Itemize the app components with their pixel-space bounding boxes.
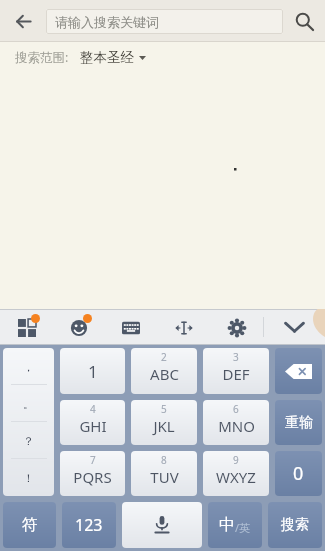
button[interactable]: Keyboard layout xyxy=(104,309,157,345)
staticText: GHI xyxy=(79,416,107,436)
button[interactable]: 8 xyxy=(131,451,197,496)
button[interactable]: Voice input xyxy=(122,502,202,548)
button[interactable]: 中 xyxy=(208,502,262,548)
button[interactable]: 请输入搜索关键词 xyxy=(46,9,283,34)
staticText: 。 xyxy=(23,397,34,411)
button[interactable]: 7 xyxy=(60,451,125,496)
button[interactable]: Hide keyboard xyxy=(263,309,325,345)
staticText: 搜索 xyxy=(281,516,309,534)
staticText: 0 xyxy=(293,461,304,486)
staticText: ！ xyxy=(23,471,34,485)
staticText: 4 xyxy=(90,402,96,416)
staticText: 整本圣经 xyxy=(80,49,134,66)
button[interactable]: 1 xyxy=(60,348,125,394)
button[interactable]: 9 xyxy=(203,451,269,496)
staticText: 请输入搜索关键词 xyxy=(55,14,159,30)
staticText: 9 xyxy=(233,453,239,467)
button[interactable]: 0 xyxy=(275,451,322,496)
button[interactable]: Search xyxy=(283,0,325,42)
staticText: 符 xyxy=(22,515,38,535)
button[interactable]: 6 xyxy=(203,400,269,445)
staticText: 3 xyxy=(233,350,239,364)
button[interactable]: Settings xyxy=(210,309,263,345)
button[interactable]: Emoji xyxy=(52,309,104,345)
staticText: MNO xyxy=(218,416,255,436)
staticText: 重输 xyxy=(285,414,313,432)
staticText: 6 xyxy=(233,402,239,416)
button[interactable]: 符 xyxy=(3,502,56,548)
button[interactable]: ， xyxy=(3,348,54,496)
staticText: 1 xyxy=(88,360,98,383)
staticText: 7 xyxy=(90,453,96,467)
staticText: PQRS xyxy=(73,467,112,487)
staticText: 5 xyxy=(161,402,167,416)
button[interactable]: Backspace xyxy=(275,348,322,394)
staticText: JKL xyxy=(153,416,175,436)
staticText: ？ xyxy=(23,434,34,448)
button[interactable]: Back xyxy=(0,0,46,42)
staticText: 中 xyxy=(219,515,235,535)
staticText: 123 xyxy=(75,514,103,536)
staticText: DEF xyxy=(222,364,250,384)
button[interactable]: Apps xyxy=(0,309,52,345)
button[interactable]: 123 xyxy=(62,502,116,548)
button[interactable]: 5 xyxy=(131,400,197,445)
staticText: ABC xyxy=(150,364,179,384)
staticText: 搜索范围: xyxy=(15,49,69,66)
staticText: /英 xyxy=(235,520,251,535)
button[interactable]: 3 xyxy=(203,348,269,394)
button[interactable]: 重输 xyxy=(275,400,322,445)
button[interactable]: 4 xyxy=(60,400,125,445)
staticText: ， xyxy=(23,360,34,374)
button[interactable]: Move cursor xyxy=(157,309,210,345)
button[interactable]: 2 xyxy=(131,348,197,394)
staticText: 8 xyxy=(161,453,167,467)
button[interactable]: 搜索 xyxy=(268,502,322,548)
button[interactable]: 整本圣经 xyxy=(80,49,146,66)
staticText: 2 xyxy=(161,350,167,364)
staticText: TUV xyxy=(150,467,179,487)
staticText: WXYZ xyxy=(216,467,256,487)
